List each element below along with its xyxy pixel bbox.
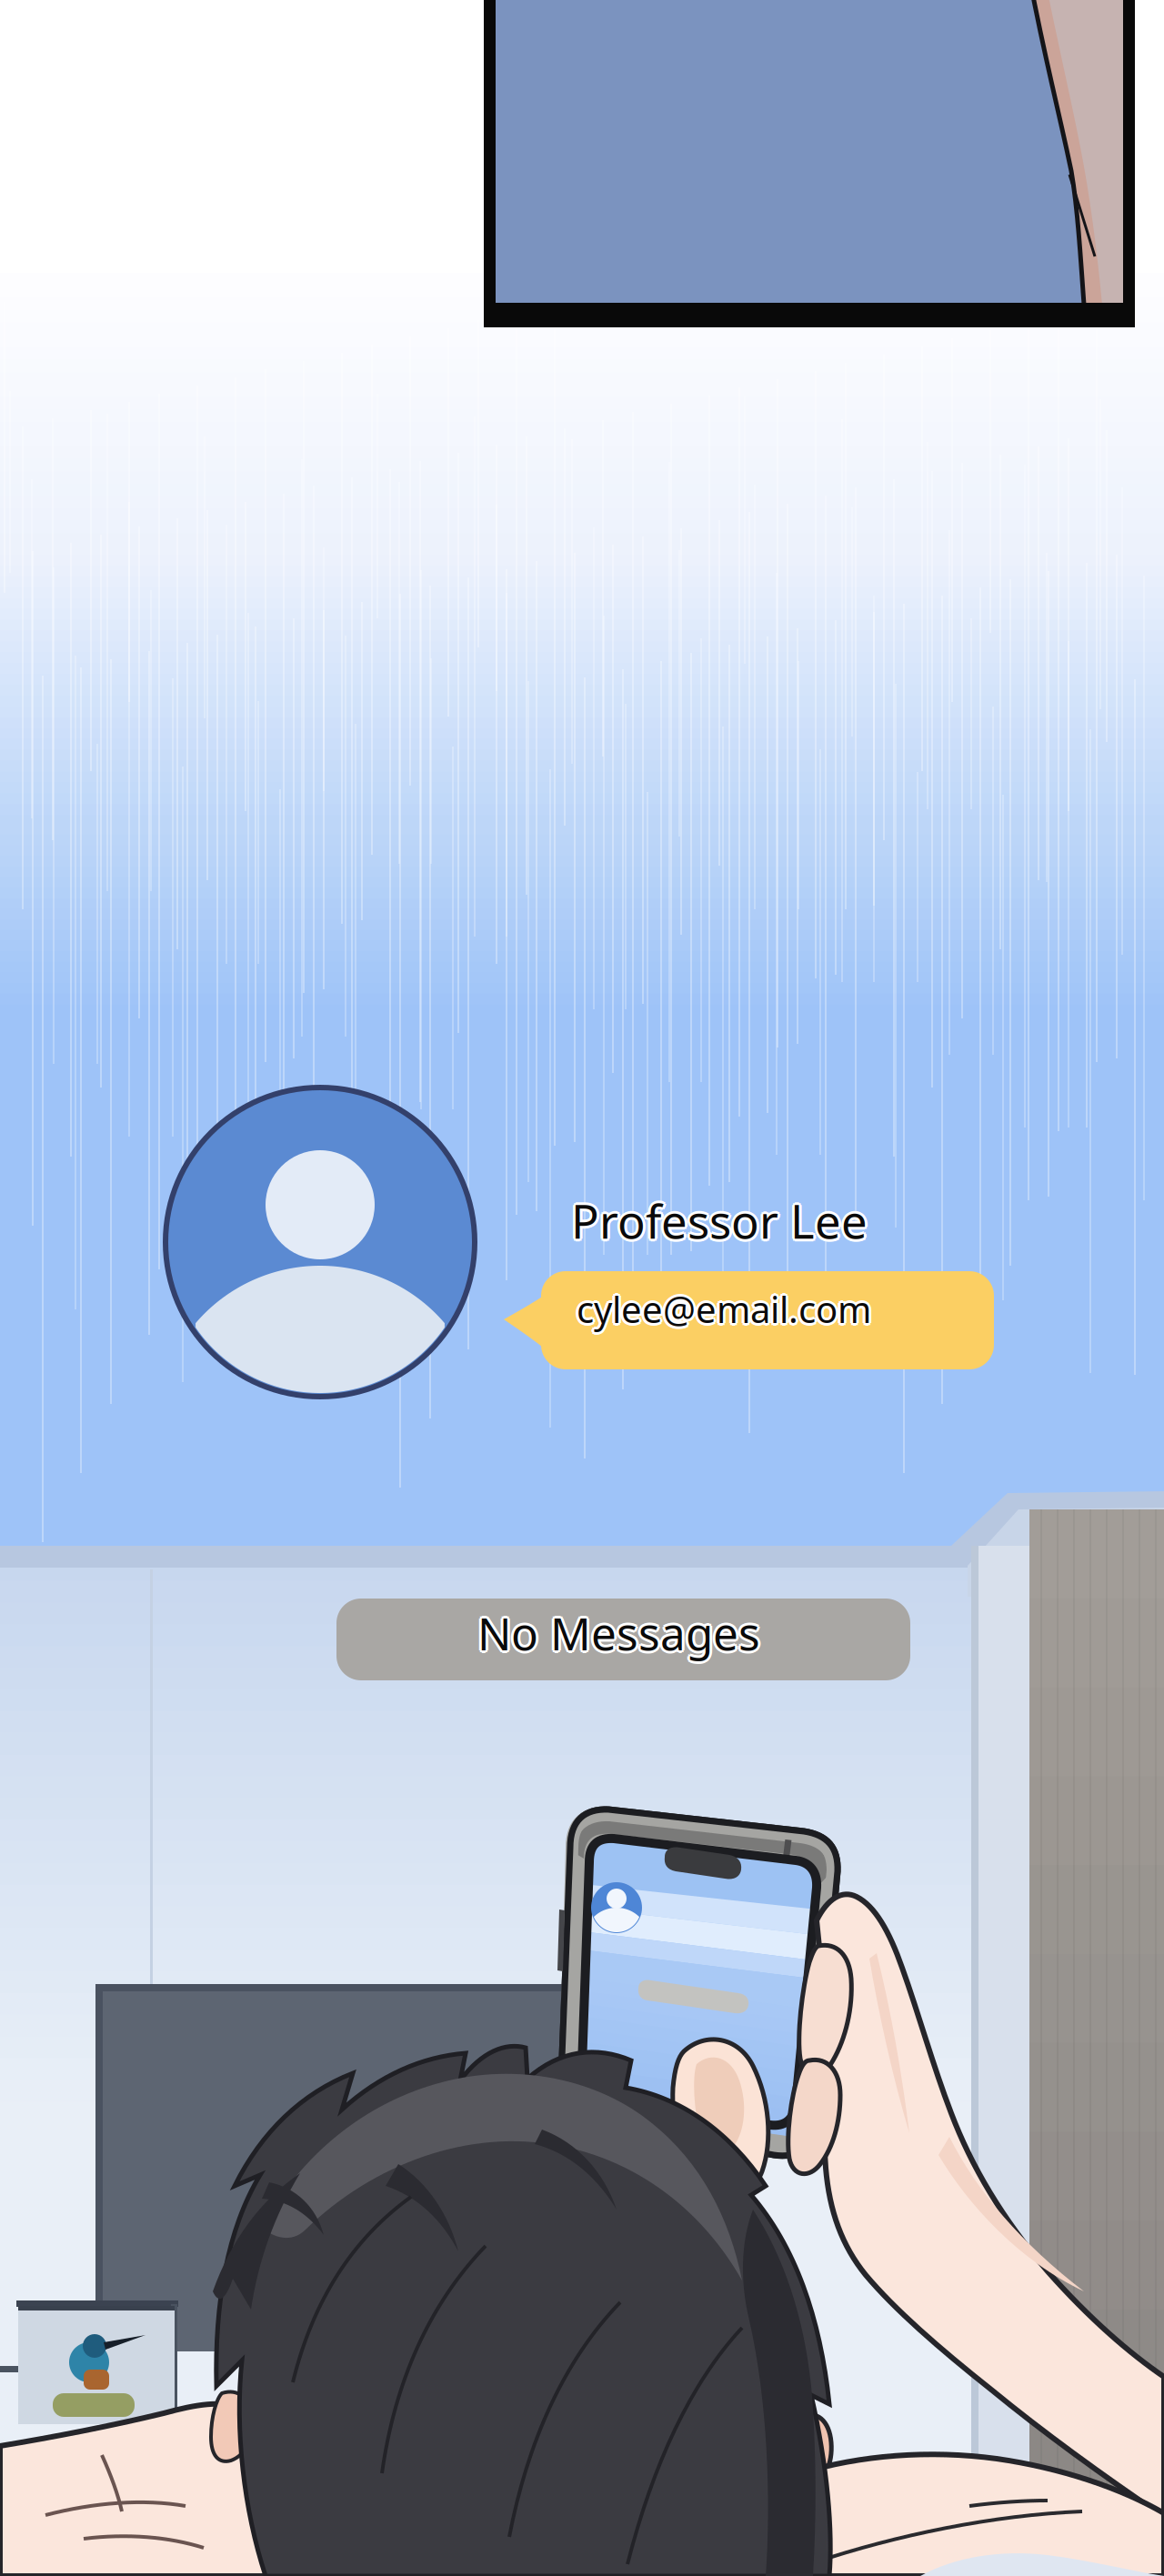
staticText: cylee@email.com — [575, 1283, 869, 1331]
staticText: cylee@email.com — [577, 1282, 871, 1330]
staticText: No Messages — [477, 1606, 760, 1665]
staticText: Professor Lee — [569, 1188, 866, 1250]
staticText: cylee@email.com — [577, 1288, 871, 1336]
staticText: Professor Lee — [573, 1188, 869, 1250]
staticText: Professor Lee — [574, 1190, 870, 1251]
staticText: cylee@email.com — [579, 1285, 874, 1333]
staticText: Professor Lee — [571, 1188, 868, 1249]
staticText: No Messages — [477, 1603, 760, 1663]
staticText: cylee@email.com — [575, 1287, 869, 1335]
staticText: No Messages — [477, 1600, 760, 1660]
staticText: Professor Lee — [571, 1190, 868, 1251]
staticText: Professor Lee — [573, 1192, 869, 1253]
staticText: cylee@email.com — [578, 1287, 873, 1335]
staticText: Professor Lee — [571, 1193, 868, 1254]
staticText: No Messages — [479, 1601, 762, 1661]
staticText: No Messages — [479, 1605, 762, 1665]
staticText: Professor Lee — [568, 1190, 865, 1251]
staticText: cylee@email.com — [578, 1283, 873, 1331]
staticText: cylee@email.com — [574, 1285, 868, 1333]
button[interactable]: No Messages — [0, 0, 1164, 2576]
button[interactable]: Professor Lee — [0, 0, 1164, 2576]
staticText: cylee@email.com — [577, 1285, 871, 1333]
staticText: No Messages — [480, 1603, 763, 1663]
staticText: No Messages — [475, 1603, 758, 1663]
staticText: No Messages — [476, 1605, 758, 1665]
staticText: Professor Lee — [569, 1192, 866, 1253]
staticText: No Messages — [476, 1601, 758, 1661]
